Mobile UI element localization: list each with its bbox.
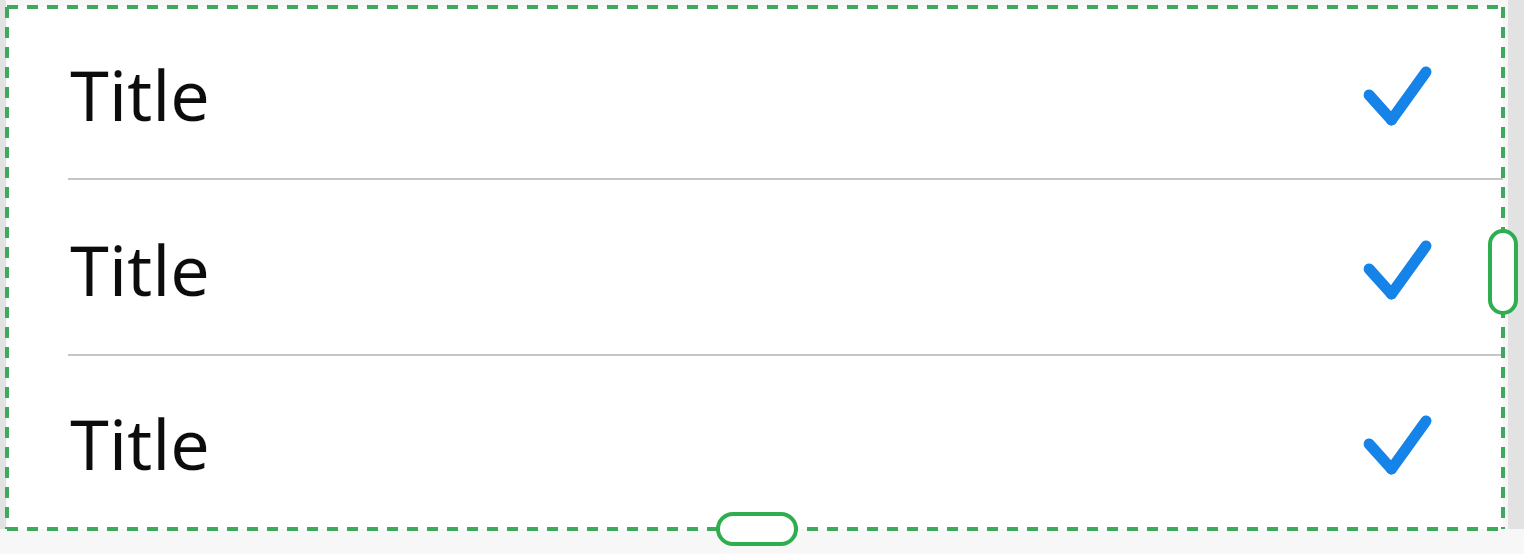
staticText: Title bbox=[70, 46, 1363, 141]
staticText: Title bbox=[70, 221, 1363, 316]
button[interactable]: Title bbox=[7, 7, 1503, 180]
other: Checked bbox=[1363, 62, 1435, 126]
other: Checked bbox=[1363, 236, 1435, 300]
button[interactable]: Title bbox=[7, 180, 1503, 356]
other: Checked bbox=[1363, 411, 1435, 475]
button[interactable]: Title bbox=[7, 356, 1503, 529]
staticText: Title bbox=[70, 395, 1363, 490]
